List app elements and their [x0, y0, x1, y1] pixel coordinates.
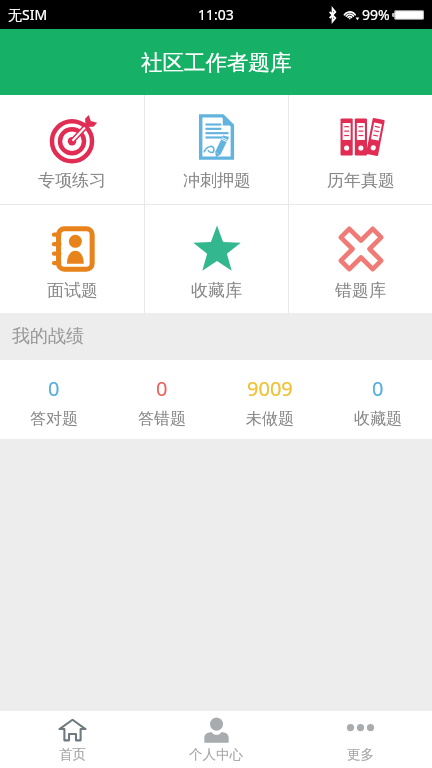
staticText: 面试题: [47, 280, 98, 301]
button[interactable]: 0: [108, 360, 216, 429]
staticText: 0: [48, 375, 60, 402]
button[interactable]: 收藏库: [145, 205, 288, 301]
staticText: 无SIM: [8, 5, 48, 24]
staticText: 专项练习: [38, 170, 106, 191]
button[interactable]: 0: [0, 360, 108, 429]
staticText: 冲刺押题: [183, 170, 251, 191]
staticText: 历年真题: [327, 170, 395, 191]
staticText: 收藏库: [191, 280, 242, 301]
button[interactable]: 0: [324, 360, 432, 429]
button[interactable]: Profile: [144, 711, 288, 763]
button[interactable]: 冲刺押题: [145, 95, 288, 191]
staticText: 答错题: [138, 409, 186, 429]
staticText: 0: [372, 375, 384, 402]
staticText: 首页: [59, 746, 86, 763]
staticText: 99%: [362, 5, 390, 24]
staticText: 个人中心: [189, 746, 243, 763]
staticText: 0: [156, 375, 168, 402]
staticText: 9009: [247, 375, 293, 402]
staticText: 11:03: [198, 5, 234, 24]
button[interactable]: 9009: [216, 360, 324, 429]
staticText: 答对题: [30, 409, 78, 429]
button[interactable]: 历年真题: [289, 95, 432, 191]
staticText: 更多: [347, 746, 374, 763]
button[interactable]: Home: [0, 711, 144, 763]
staticText: 未做题: [246, 409, 294, 429]
button[interactable]: More: [288, 711, 432, 763]
button[interactable]: 面试题: [0, 205, 144, 301]
staticText: 错题库: [335, 280, 386, 301]
staticText: 我的战绩: [12, 325, 84, 348]
staticText: 社区工作者题库: [141, 49, 292, 76]
button[interactable]: 错题库: [289, 205, 432, 301]
button[interactable]: 专项练习: [0, 95, 144, 191]
staticText: 收藏题: [354, 409, 402, 429]
